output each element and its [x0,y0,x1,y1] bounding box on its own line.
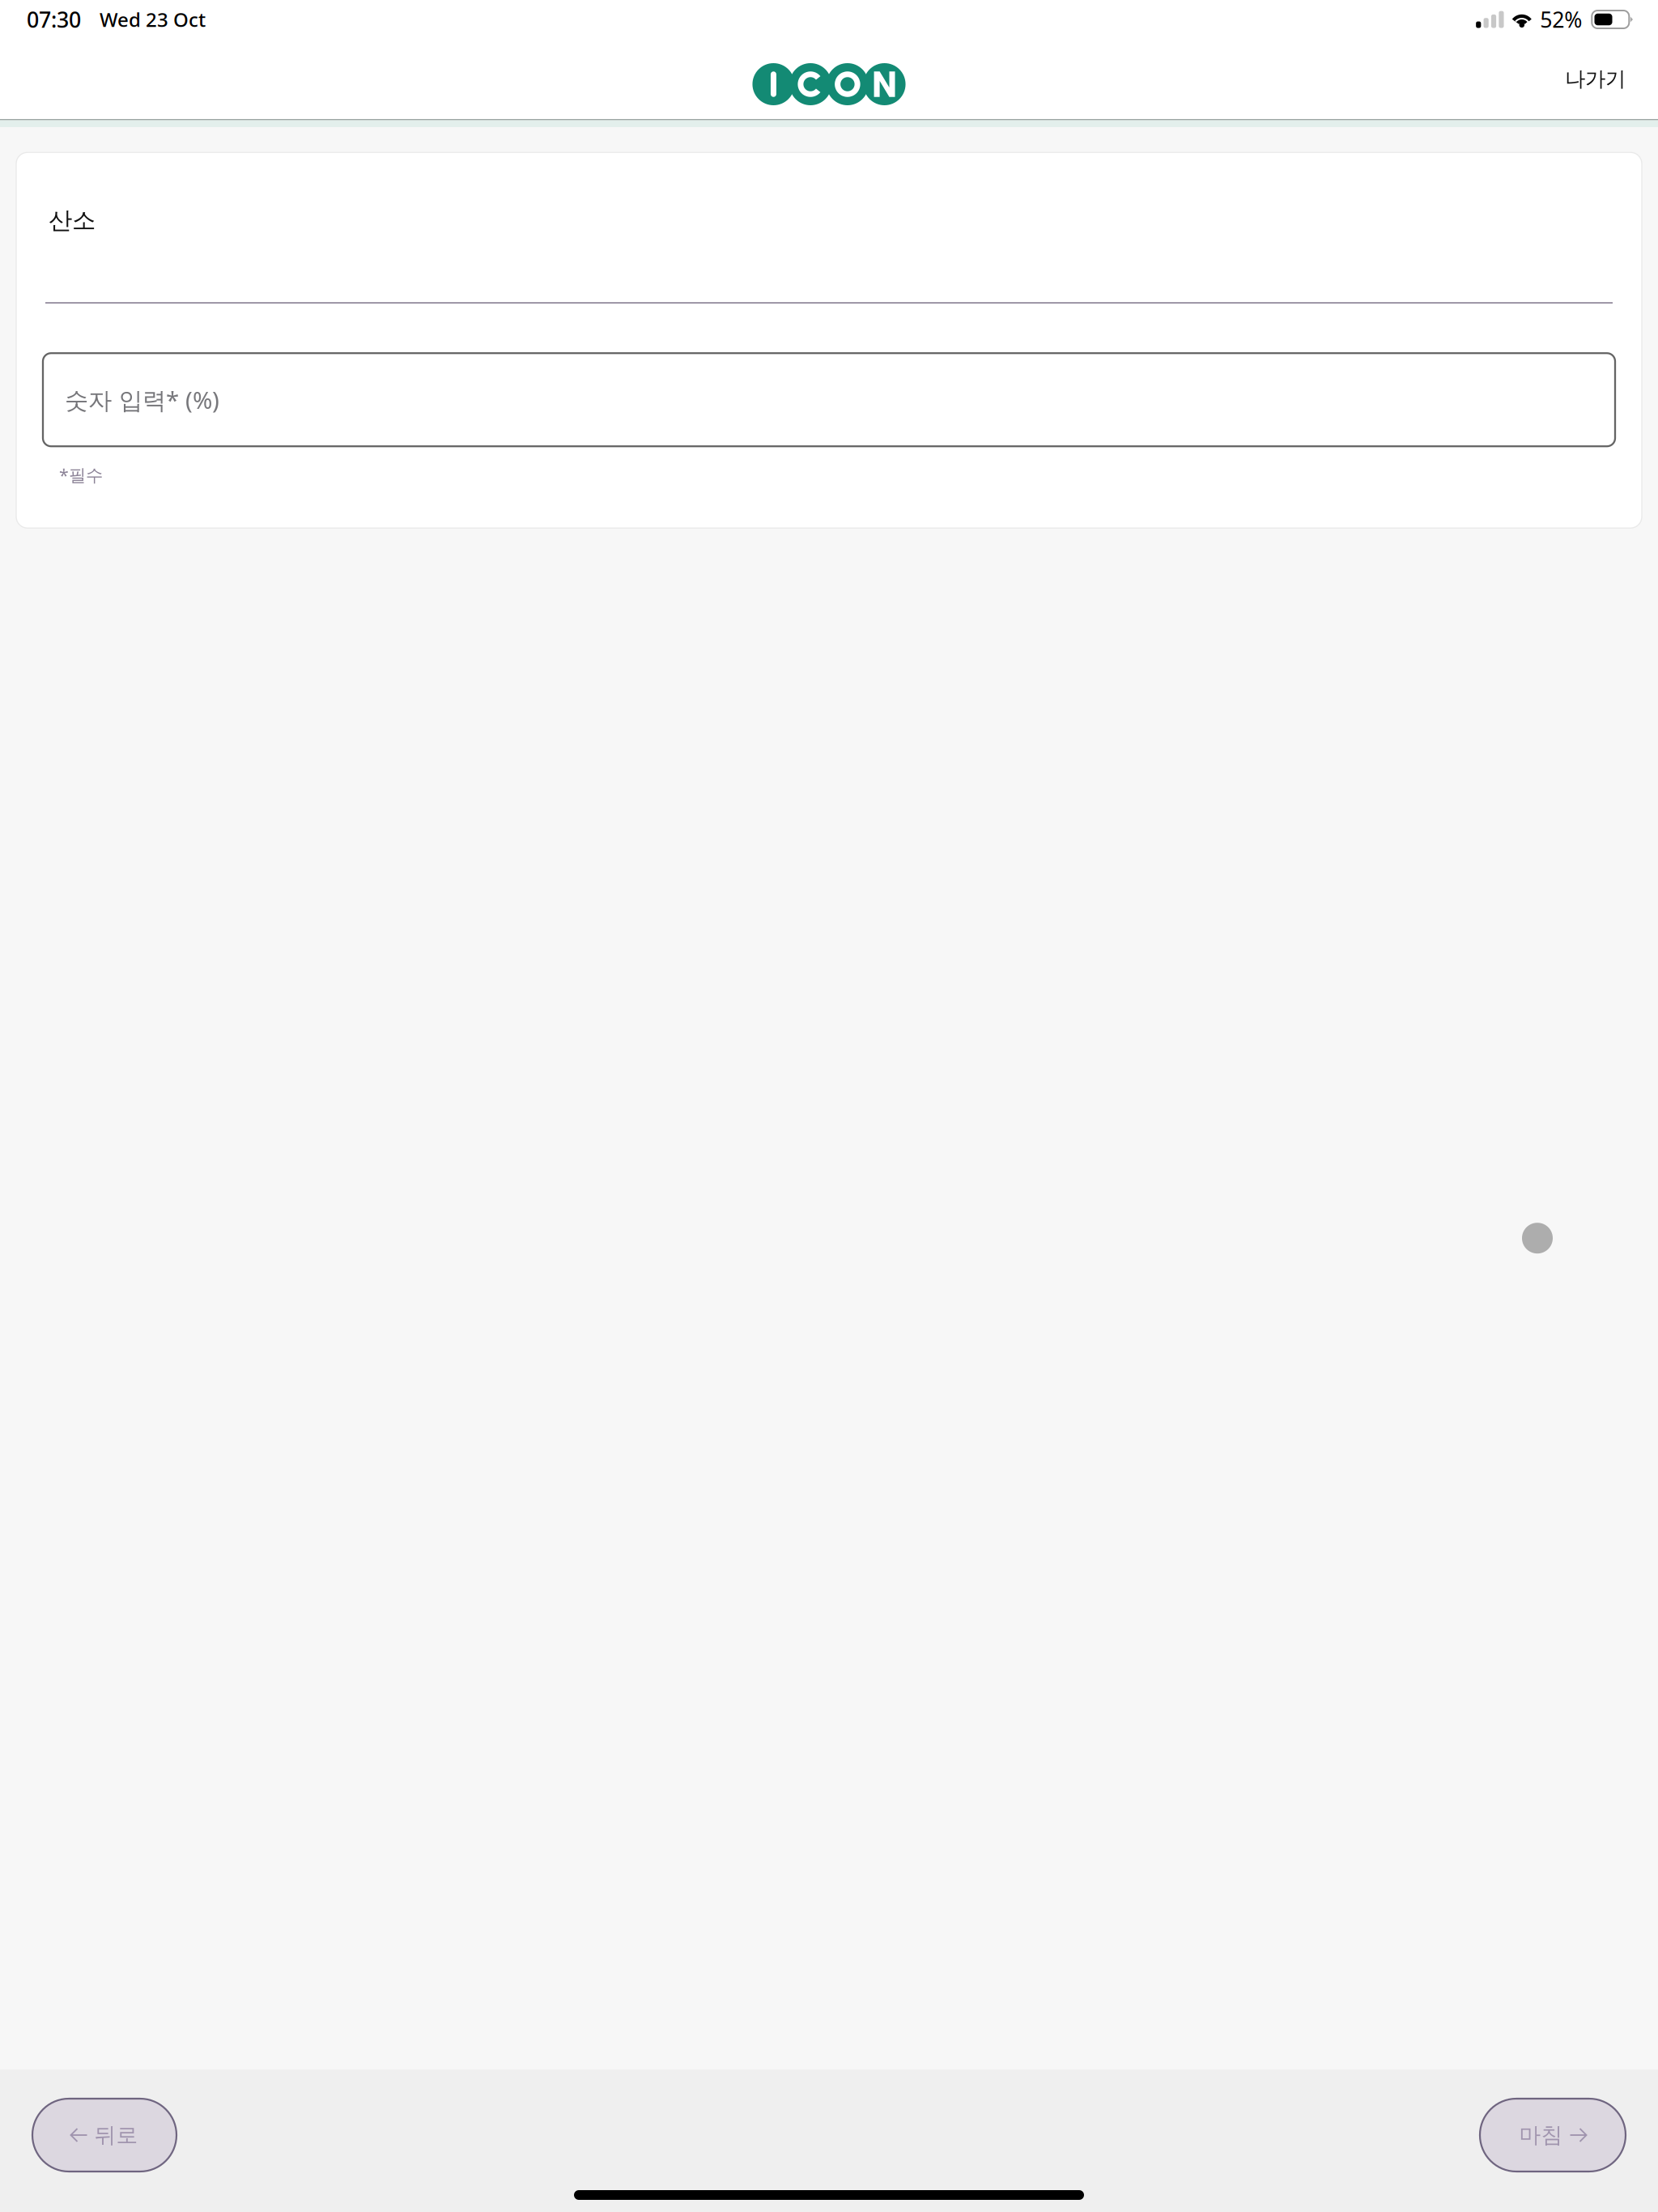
staticText: 52% [1540,5,1582,34]
staticText: 07:30 [27,5,81,34]
staticText: 마침 [1519,2122,1563,2148]
staticText: Wed 23 Oct [100,7,206,32]
staticText: 산소 [49,206,96,235]
button[interactable]: AssistiveTouch [1522,1223,1553,1254]
staticText: 뒤로 [94,2122,138,2148]
staticText: *필수 [59,463,103,486]
button[interactable]: 나가기 [1550,55,1640,103]
button[interactable]: 뒤로 [32,2099,176,2172]
button[interactable]: 마침 [1480,2099,1626,2172]
button[interactable]: 숫자 입력* (%) [43,353,1615,446]
staticText: 숫자 입력* (%) [65,384,219,416]
staticText: 나가기 [1565,66,1626,91]
